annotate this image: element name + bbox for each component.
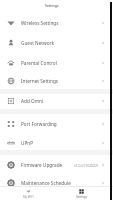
staticText: Port Forwarding bbox=[21, 121, 57, 127]
staticText: Add Omni bbox=[21, 98, 44, 104]
staticText: Firmware Upgrade bbox=[21, 162, 63, 168]
button[interactable]: Wireless Settings bbox=[0, 13, 113, 32]
button[interactable]: Firmware Upgrade bbox=[0, 156, 113, 174]
staticText: Internet Settings bbox=[21, 78, 59, 84]
staticText: Wireless Settings bbox=[21, 20, 59, 26]
staticText: UPnP bbox=[21, 140, 33, 146]
staticText: Parental Control bbox=[21, 60, 57, 66]
staticText: My WiFi bbox=[23, 195, 34, 199]
staticText: Guest Network bbox=[21, 40, 54, 46]
button[interactable]: Guest Network bbox=[0, 33, 113, 52]
staticText: Settings bbox=[45, 3, 59, 8]
button[interactable]: UPnP bbox=[0, 133, 113, 152]
button[interactable]: Settings bbox=[63, 186, 99, 200]
staticText: Maintenance Schedule bbox=[21, 180, 71, 186]
button[interactable]: Internet Settings bbox=[0, 73, 113, 89]
button[interactable]: Parental Control bbox=[0, 53, 113, 72]
button[interactable]: Add Omni bbox=[0, 92, 113, 110]
staticText: Settings bbox=[76, 195, 87, 199]
button[interactable]: My WiFi bbox=[10, 186, 46, 200]
staticText: v1.0.0 (162022) bbox=[74, 163, 98, 168]
button[interactable]: Maintenance Schedule bbox=[0, 174, 113, 192]
button[interactable]: Port Forwarding bbox=[0, 114, 113, 133]
